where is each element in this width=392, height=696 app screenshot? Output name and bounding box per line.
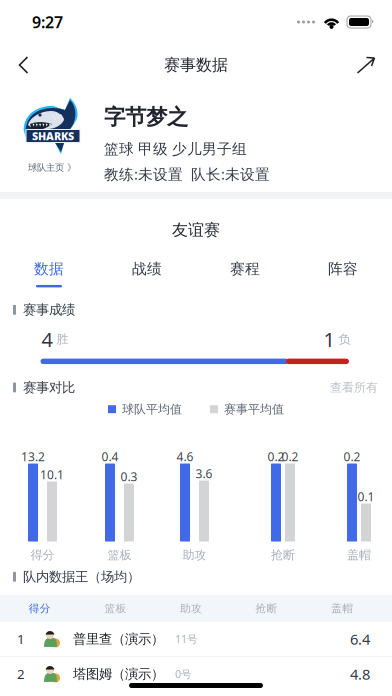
staticText: 队内数据王（场均） (23, 569, 140, 585)
staticText: 助攻 (182, 548, 206, 562)
staticText: 得分 (30, 548, 54, 562)
button[interactable]: 数据 (0, 255, 98, 292)
button[interactable]: 2 (0, 657, 392, 691)
staticText: 篮板 (104, 602, 126, 615)
staticText: 盖帽 (331, 602, 353, 615)
staticText: 2 (17, 665, 25, 683)
staticText: 1 (17, 630, 25, 648)
staticText: 友谊赛 (172, 220, 220, 240)
staticText: 6.4 (350, 629, 370, 649)
staticText: 教练:未设置 队长:未设置 (104, 164, 270, 184)
button[interactable]: 1 (0, 622, 392, 656)
staticText: 抢断 (271, 548, 295, 562)
staticText: 得分 (29, 602, 51, 615)
staticText: 1 (323, 326, 334, 353)
staticText: 赛事对比 (23, 379, 75, 396)
staticText: 战绩 (132, 260, 162, 278)
button[interactable]: 助攻 (153, 595, 229, 622)
staticText: 篮球 甲级 少儿男子组 (104, 140, 247, 158)
button[interactable]: 篮板 (78, 595, 153, 622)
staticText: 3.6 (195, 466, 212, 481)
staticText: 赛事成绩 (23, 302, 75, 318)
staticText: 助攻 (180, 602, 202, 615)
staticText: 0.2 (267, 449, 284, 464)
button[interactable]: 赛程 (196, 255, 294, 292)
staticText: 字节梦之 (104, 104, 188, 130)
staticText: 4 (41, 326, 52, 353)
staticText: 抢断 (256, 602, 278, 615)
staticText: 盖帽 (347, 548, 371, 562)
staticText: 10.1 (40, 467, 64, 482)
staticText: 球队平均值 (122, 402, 182, 416)
staticText: 11号 (175, 632, 198, 646)
staticText: 13.2 (21, 449, 45, 464)
staticText: 4.6 (176, 449, 193, 464)
staticText: 4.8 (350, 664, 370, 684)
button[interactable]: 盖帽 (304, 595, 380, 622)
button[interactable]: 得分 (2, 595, 78, 622)
staticText: 数据 (34, 260, 64, 278)
staticText: 塔图姆（演示） (73, 666, 164, 682)
staticText: 0号 (175, 667, 192, 681)
button[interactable]: 返回 (0, 45, 45, 85)
staticText: 赛事数据 (164, 55, 228, 75)
staticText: 负 (334, 332, 350, 347)
button[interactable]: SHARKS (0, 86, 104, 192)
staticText: SHARKS (32, 129, 74, 143)
button[interactable]: 分享 (341, 44, 392, 85)
staticText: 查看所有 (330, 380, 378, 395)
button[interactable]: 战绩 (98, 255, 196, 292)
staticText: 普里查（演示） (73, 631, 164, 647)
staticText: 0.2 (281, 449, 298, 464)
staticText: 球队主页 》 (28, 162, 76, 173)
staticText: 胜 (52, 332, 68, 347)
button[interactable]: 抢断 (229, 595, 304, 622)
staticText: 篮板 (107, 548, 131, 562)
button[interactable]: 查看所有 (330, 376, 378, 399)
staticText: 0.3 (120, 469, 137, 484)
staticText: 赛事平均值 (224, 402, 284, 416)
staticText: 0.2 (343, 449, 360, 464)
staticText: 阵容 (328, 260, 358, 278)
staticText: 9:27 (32, 11, 63, 33)
staticText: 0.1 (357, 489, 374, 504)
staticText: 0.4 (101, 449, 118, 464)
button[interactable]: 阵容 (294, 255, 392, 292)
staticText: 赛程 (230, 260, 260, 278)
